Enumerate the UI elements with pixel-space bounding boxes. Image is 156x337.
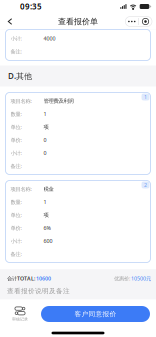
staticText: 单位: (10, 211, 21, 219)
staticText: 项 (43, 212, 48, 218)
staticText: 查看报价单 (58, 17, 98, 26)
staticText: 单价: (10, 224, 21, 232)
staticText: 项目名称: (10, 97, 31, 105)
staticText: 管理费及利润 (43, 98, 73, 104)
staticText: 备注: (10, 250, 21, 258)
button[interactable]: 审核记录 (0, 303, 40, 325)
staticText: 备注: (10, 48, 21, 55)
button[interactable]: Close (139, 16, 152, 26)
staticText: 10600 (36, 275, 51, 282)
staticText: 税金 (43, 186, 53, 192)
staticText: 09:35 (20, 1, 42, 12)
staticText: 数量: (10, 110, 21, 118)
staticText: 0 (43, 149, 46, 157)
staticText: 单位: (10, 123, 21, 131)
staticText: 查看报价说明及备注 (7, 287, 70, 295)
staticText: 4000 (43, 35, 55, 42)
staticText: 项 (43, 124, 48, 130)
staticText: 1 (43, 110, 46, 118)
staticText: 数量: (10, 198, 21, 206)
staticText: 0 (43, 136, 46, 144)
staticText: 项目名称: (10, 185, 31, 193)
button[interactable]: 查看报价说明及备注 (0, 285, 156, 297)
staticText: 小计: (10, 237, 21, 245)
staticText: 审核记录 (12, 317, 28, 322)
button[interactable]: 客户同意报价 (41, 306, 150, 322)
staticText: D.其他 (8, 71, 32, 81)
staticText: 备注: (10, 162, 21, 170)
button[interactable]: More (125, 16, 138, 26)
staticText: 1 (43, 198, 46, 206)
staticText: 10500元 (131, 275, 151, 282)
staticText: 优惠价: (114, 275, 131, 282)
staticText: 2 (144, 181, 147, 189)
staticText: 1 (144, 93, 147, 101)
staticText: 客户同意报价 (74, 310, 116, 318)
staticText: 6% (43, 224, 50, 232)
staticText: 单价: (10, 136, 21, 144)
button[interactable]: Back (2, 13, 18, 29)
staticText: 合计TOTAL: (7, 275, 36, 282)
staticText: 小计: (10, 149, 21, 157)
staticText: 600 (43, 237, 52, 245)
staticText: 小计: (10, 35, 21, 42)
